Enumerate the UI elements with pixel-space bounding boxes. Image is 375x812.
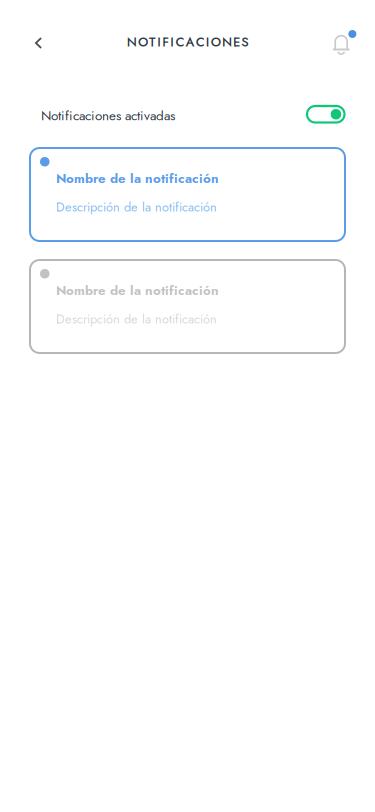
button[interactable]: Notificaciones activadas [307, 106, 344, 122]
button[interactable]: Nombre de la notificación [30, 148, 345, 241]
staticText: Nombre de la notificación [56, 281, 219, 300]
button[interactable]: Nombre de la notificación [30, 260, 345, 353]
staticText: Descripción de la notificación [56, 198, 217, 216]
button[interactable]: Atrás [16, 21, 60, 65]
staticText: Notificaciones activadas [41, 106, 175, 125]
staticText: Descripción de la notificación [56, 310, 217, 328]
staticText: NOTIFICACIONES [127, 33, 248, 51]
staticText: Nombre de la notificación [56, 169, 219, 188]
button[interactable]: Notificaciones [323, 22, 367, 66]
